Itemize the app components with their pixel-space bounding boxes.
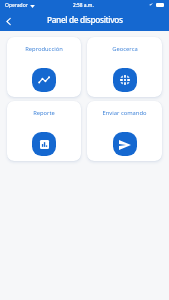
staticText: Operador (5, 2, 28, 9)
button[interactable]: Reporte (7, 101, 81, 161)
staticText: Geocerca (112, 45, 138, 53)
button[interactable]: Back (0, 13, 17, 30)
staticText: Panel de dispositivos (47, 14, 123, 25)
staticText: Reproducción (25, 45, 63, 53)
staticText: Enviar comando (102, 109, 147, 117)
button[interactable]: Reproducción (7, 37, 81, 97)
button[interactable]: Geocerca (87, 37, 162, 97)
staticText: 2:58 a.m. (73, 2, 94, 9)
button[interactable]: Enviar comando (87, 101, 162, 161)
staticText: Reporte (33, 109, 55, 117)
